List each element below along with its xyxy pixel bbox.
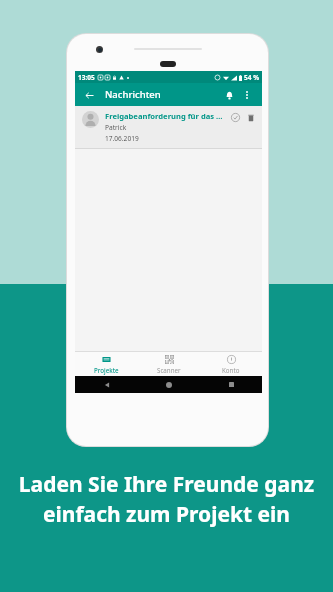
button[interactable]: Back [75,376,138,393]
staticText: 13:05 [78,73,95,82]
button[interactable]: Back [81,87,97,103]
button[interactable]: More options [238,86,256,104]
staticText: Patrick [105,123,127,132]
button[interactable]: Recents [200,376,262,393]
button[interactable]: Mark as read [229,111,242,124]
staticText: 54 % [244,73,259,82]
staticText: Freigabeanforderung für das Projekt:.. [105,111,227,121]
button[interactable]: Freigabeanforderung für das Projekt:.. [75,106,262,149]
staticText: Konto [222,366,240,374]
staticText: Projekte [94,366,119,374]
button[interactable]: Notifications [220,86,238,104]
button[interactable]: Scanner [138,352,200,376]
button[interactable]: Home [138,376,200,393]
staticText: Nachrichten [105,88,161,101]
button[interactable]: Konto [200,352,262,376]
staticText: Laden Sie Ihre Freunde ganz einfach zum … [14,470,319,528]
staticText: Scanner [157,366,181,374]
button[interactable]: Projekte [75,352,138,376]
staticText: 17.06.2019 [105,134,139,143]
button[interactable]: Delete [244,111,257,124]
